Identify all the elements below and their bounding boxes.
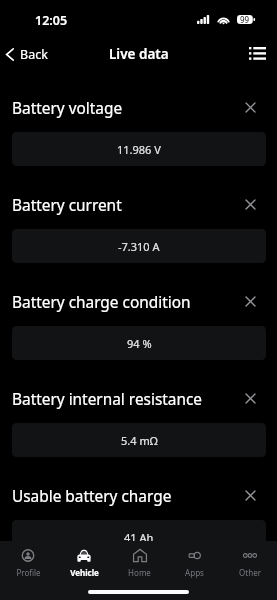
button[interactable]: Apps (167, 541, 222, 584)
staticText: 99 (240, 14, 250, 25)
button[interactable]: Remove Usable battery charge (240, 485, 261, 506)
staticText: 5.4 mΩ (121, 433, 158, 448)
button[interactable]: 11.986 V (12, 132, 266, 166)
button[interactable]: Profile (0, 541, 56, 584)
button[interactable]: Other (222, 541, 277, 584)
staticText: Home (128, 567, 151, 578)
button[interactable]: Home (112, 541, 167, 584)
staticText: Apps (185, 567, 204, 578)
staticText: Battery charge condition (12, 292, 240, 313)
button[interactable]: Vehicle (56, 541, 112, 584)
button[interactable]: Remove Battery charge condition (240, 291, 261, 312)
staticText: Battery voltage (12, 98, 240, 119)
staticText: Live data (109, 45, 169, 63)
button[interactable]: Back (0, 43, 56, 66)
button[interactable]: 41 Ah (12, 520, 266, 554)
staticText: Other (239, 567, 261, 578)
button[interactable]: Remove Battery voltage (240, 97, 261, 118)
button[interactable]: -7.310 A (12, 229, 266, 263)
button[interactable]: 5.4 mΩ (12, 423, 266, 457)
button[interactable]: 94 % (12, 326, 266, 360)
staticText: 12:05 (35, 12, 68, 29)
staticText: 94 % (127, 336, 152, 351)
button[interactable]: List view options (237, 40, 277, 66)
staticText: -7.310 A (118, 239, 160, 254)
staticText: Profile (16, 567, 41, 578)
button[interactable]: Remove Battery current (240, 194, 261, 215)
staticText: Battery internal resistance (12, 389, 240, 410)
staticText: 11.986 V (117, 142, 161, 157)
staticText: Vehicle (70, 567, 99, 578)
staticText: Back (20, 46, 48, 63)
staticText: Battery current (12, 195, 240, 216)
staticText: 41 Ah (124, 530, 154, 545)
staticText: Usable battery charge (12, 486, 240, 507)
button[interactable]: Remove Battery internal resistance (240, 388, 261, 409)
